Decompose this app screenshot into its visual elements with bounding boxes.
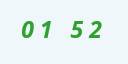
staticText: 01 52 [21, 13, 108, 44]
